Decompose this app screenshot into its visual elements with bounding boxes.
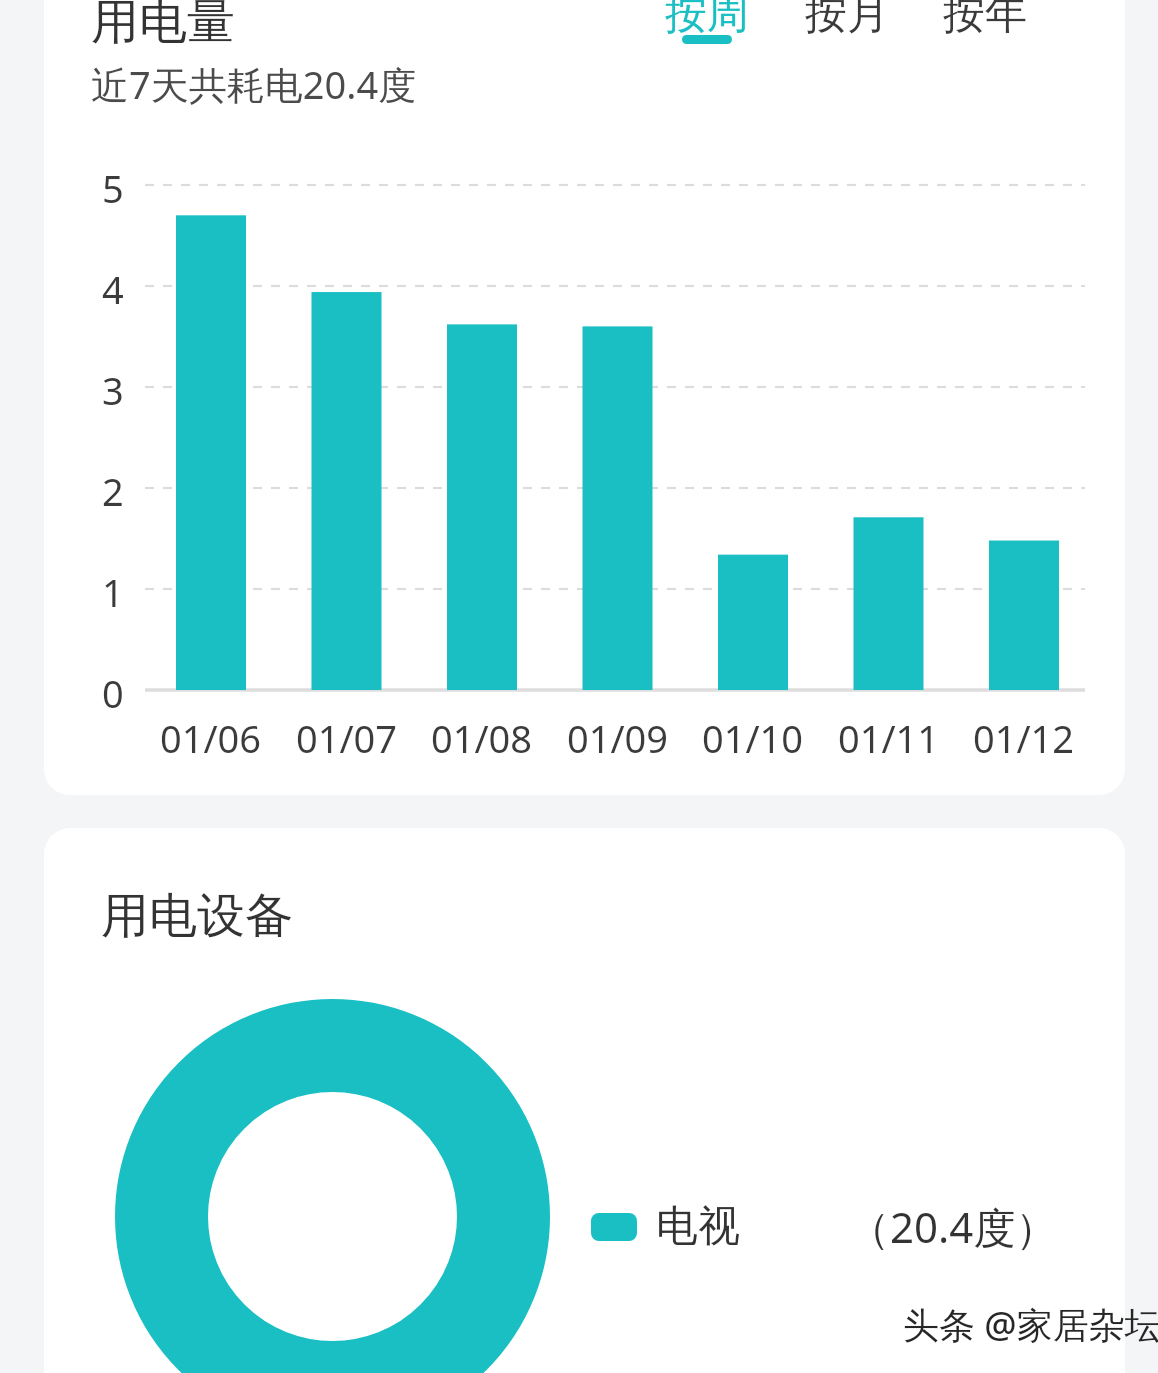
- staticText: 01/07: [296, 712, 398, 764]
- staticText: 用电设备: [101, 886, 293, 946]
- button[interactable]: 按年: [939, 0, 1031, 41]
- staticText: 01/06: [160, 712, 262, 764]
- staticText: 01/11: [838, 712, 940, 764]
- staticText: 01/10: [702, 712, 804, 764]
- staticText: 0: [102, 667, 124, 719]
- staticText: 近7天共耗电20.4度: [91, 58, 417, 110]
- staticText: 按月: [805, 0, 889, 41]
- staticText: 2: [102, 465, 124, 517]
- staticText: 4: [102, 263, 124, 315]
- staticText: 01/08: [431, 712, 533, 764]
- staticText: 1: [102, 566, 124, 618]
- staticText: 01/09: [567, 712, 669, 764]
- staticText: 用电量: [91, 0, 235, 52]
- button[interactable]: 按周: [661, 0, 753, 41]
- staticText: 01/12: [973, 712, 1075, 764]
- button[interactable]: 电视: [591, 1198, 1058, 1255]
- staticText: 按周: [665, 0, 749, 41]
- staticText: 3: [102, 364, 124, 416]
- staticText: 5: [102, 162, 124, 214]
- staticText: 电视: [656, 1200, 740, 1253]
- button[interactable]: 按月: [801, 0, 893, 41]
- staticText: 按年: [943, 0, 1027, 41]
- staticText: （20.4度）: [848, 1198, 1058, 1255]
- staticText: 头条 @家居杂坛: [903, 1300, 1158, 1349]
